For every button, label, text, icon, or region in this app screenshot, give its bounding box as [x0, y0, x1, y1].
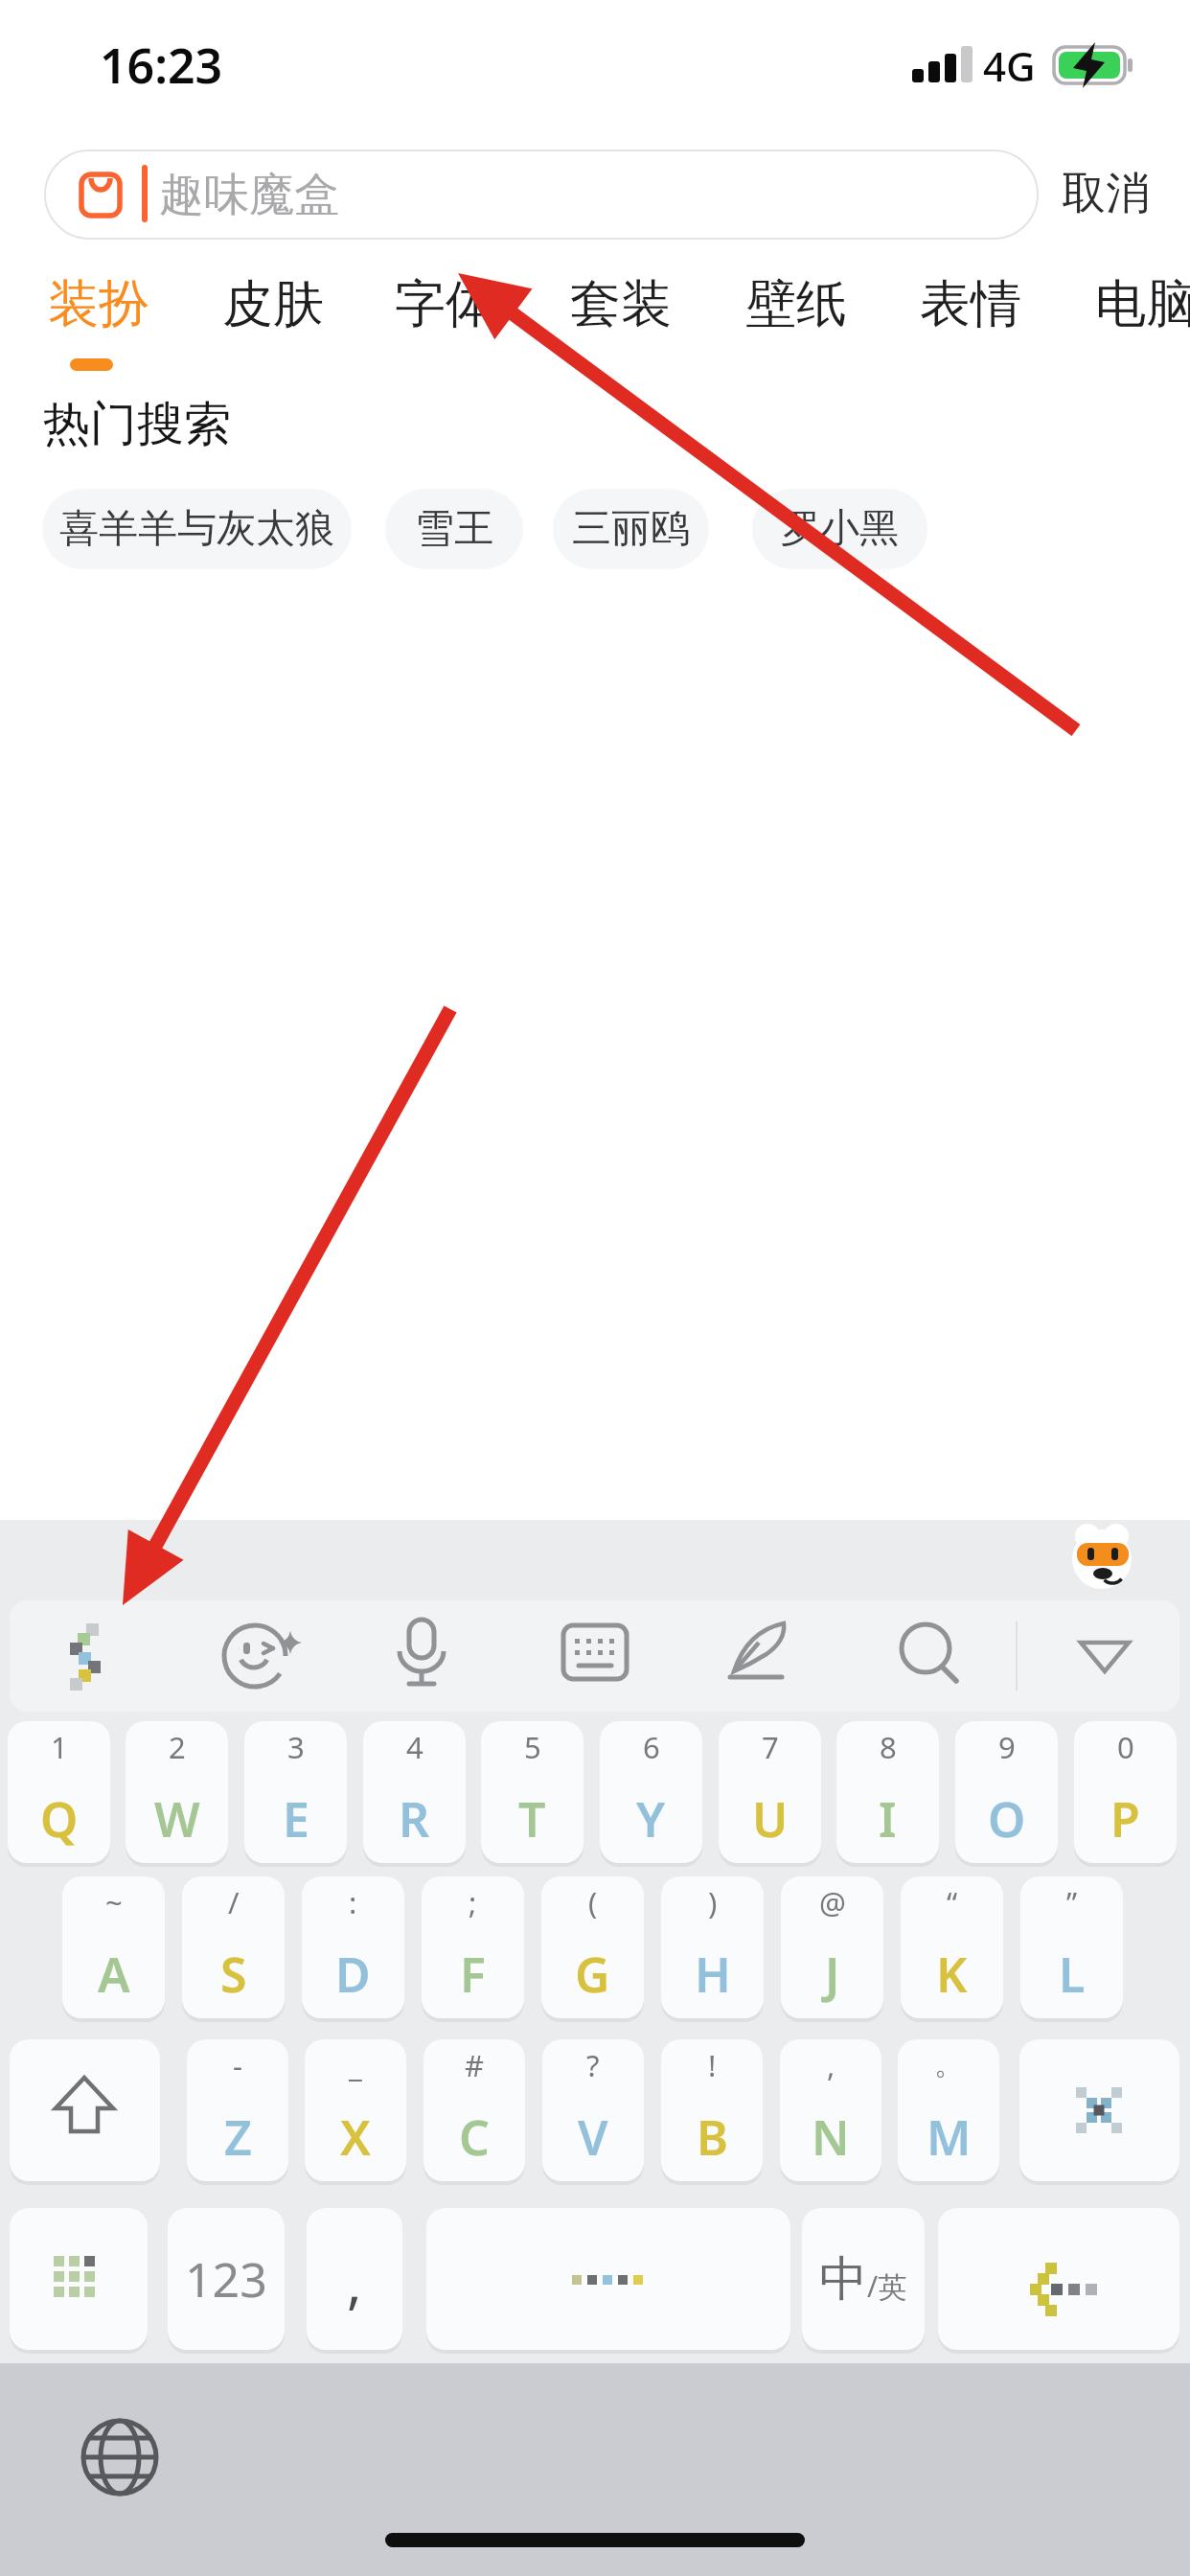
staticText: 趣味魔盒 — [159, 167, 339, 223]
button[interactable]: - — [187, 2039, 288, 2181]
button[interactable]: _ — [305, 2039, 406, 2181]
staticText: 三丽鸥 — [572, 504, 690, 554]
staticText: 装扮 — [48, 272, 149, 336]
staticText: 字体 — [395, 272, 496, 336]
button[interactable]: 7 — [719, 1721, 821, 1863]
button[interactable] — [379, 1614, 464, 1698]
button[interactable]: ! — [661, 2039, 763, 2181]
button[interactable]: 1 — [8, 1721, 110, 1863]
button[interactable] — [1062, 1621, 1150, 1690]
button[interactable]: 套装 — [570, 272, 672, 336]
staticText: 8 — [880, 1727, 897, 1767]
staticText: V — [578, 2104, 608, 2170]
button[interactable]: 壁纸 — [745, 272, 847, 336]
staticText: 。 — [934, 2045, 964, 2082]
staticText: - — [233, 2045, 242, 2085]
staticText: 16:23 — [100, 33, 223, 98]
staticText: ; — [469, 1882, 477, 1922]
button[interactable] — [554, 1614, 638, 1698]
staticText: , — [347, 2243, 362, 2319]
button[interactable]: , — [307, 2208, 402, 2350]
button[interactable]: ( — [541, 1876, 644, 2018]
button[interactable]: 电脑端 — [1095, 272, 1190, 336]
button[interactable]: 123 — [168, 2208, 285, 2350]
staticText: E — [283, 1786, 309, 1851]
button[interactable] — [1019, 2039, 1179, 2181]
button[interactable]: 装扮 — [48, 272, 149, 336]
button[interactable] — [209, 1614, 301, 1698]
button[interactable] — [721, 1614, 805, 1698]
button[interactable]: 。 — [898, 2039, 999, 2181]
staticText: A — [98, 1942, 130, 2007]
button[interactable]: “ — [901, 1876, 1003, 2018]
button[interactable]: 8 — [836, 1721, 939, 1863]
button[interactable]: 雪王 — [385, 489, 523, 569]
button[interactable] — [10, 2208, 148, 2350]
staticText: 4 — [406, 1727, 423, 1767]
button[interactable]: , — [780, 2039, 881, 2181]
button[interactable]: 5 — [481, 1721, 584, 1863]
staticText: X — [340, 2104, 371, 2170]
button[interactable]: 9 — [955, 1721, 1058, 1863]
button[interactable]: ~ — [62, 1876, 165, 2018]
staticText: 喜羊羊与灰太狼 — [59, 504, 334, 554]
staticText: / — [228, 1882, 240, 1922]
button[interactable]: ? — [542, 2039, 644, 2181]
staticText: F — [460, 1942, 486, 2007]
staticText: 电脑端 — [1095, 272, 1190, 336]
button[interactable]: 3 — [244, 1721, 347, 1863]
staticText: ! — [708, 2045, 717, 2085]
button[interactable]: 字体 — [395, 272, 496, 336]
staticText: 9 — [998, 1727, 1016, 1767]
button[interactable] — [938, 2208, 1179, 2350]
button[interactable]: 皮肤 — [222, 272, 324, 336]
button[interactable] — [887, 1614, 972, 1698]
staticText: # — [465, 2045, 485, 2085]
staticText: @ — [819, 1882, 846, 1922]
button[interactable]: 表情 — [920, 272, 1021, 336]
button[interactable]: 取消 — [1054, 158, 1157, 229]
button[interactable]: 4 — [363, 1721, 466, 1863]
staticText: 6 — [643, 1727, 660, 1767]
button[interactable]: # — [423, 2039, 525, 2181]
staticText: B — [697, 2104, 728, 2170]
staticText: _ — [349, 2045, 362, 2085]
button[interactable]: 2 — [126, 1721, 228, 1863]
button[interactable]: 0 — [1074, 1721, 1177, 1863]
button[interactable]: ) — [661, 1876, 764, 2018]
button[interactable]: @ — [781, 1876, 883, 2018]
button[interactable]: ; — [422, 1876, 524, 2018]
button[interactable]: / — [182, 1876, 285, 2018]
staticText: ) — [708, 1882, 718, 1922]
staticText: K — [936, 1942, 968, 2007]
button[interactable] — [50, 1614, 119, 1698]
button[interactable]: : — [302, 1876, 404, 2018]
staticText: 雪王 — [415, 504, 493, 554]
button[interactable]: 喜羊羊与灰太狼 — [42, 489, 352, 569]
staticText: J — [825, 1942, 840, 2007]
button[interactable] — [10, 2039, 160, 2181]
button[interactable]: 罗小黑 — [752, 489, 927, 569]
staticText: 1 — [51, 1727, 68, 1767]
staticText: ” — [1066, 1882, 1078, 1922]
staticText: P — [1110, 1786, 1140, 1851]
button[interactable] — [1069, 1528, 1134, 1589]
button[interactable] — [44, 149, 1039, 240]
staticText: 3 — [287, 1727, 305, 1767]
button[interactable]: 中 — [802, 2208, 925, 2350]
staticText: 4G — [983, 38, 1036, 93]
button[interactable]: 三丽鸥 — [553, 489, 709, 569]
staticText: “ — [947, 1882, 958, 1922]
staticText: 2 — [169, 1727, 186, 1767]
staticText: U — [752, 1786, 789, 1851]
staticText: 0 — [1117, 1727, 1134, 1767]
staticText: R — [399, 1786, 430, 1851]
button[interactable] — [80, 2417, 160, 2497]
button[interactable]: ” — [1020, 1876, 1123, 2018]
staticText: 表情 — [920, 272, 1021, 336]
button[interactable] — [426, 2208, 790, 2350]
staticText: L — [1059, 1942, 1086, 2007]
staticText: T — [518, 1786, 546, 1851]
staticText: /英 — [867, 2266, 907, 2306]
button[interactable]: 6 — [600, 1721, 702, 1863]
